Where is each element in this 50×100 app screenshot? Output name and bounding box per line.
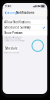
button[interactable]: Allow Notifications — [3, 20, 47, 25]
staticText: Schedule — [5, 47, 18, 50]
staticText: 9:41 — [5, 4, 12, 8]
staticText: Scheduled Summary — [4, 26, 30, 29]
staticText: Settings — [7, 11, 18, 14]
button[interactable]: Schedule — [4, 46, 19, 51]
button[interactable]: Settings — [4, 10, 19, 15]
staticText: Show Previews — [4, 31, 22, 35]
staticText: Notifications — [16, 11, 34, 14]
staticText: Allow Notifications — [4, 20, 30, 24]
button[interactable]: Scheduled Summary — [3, 25, 47, 30]
staticText: Deliver on a schedule — [4, 52, 19, 54]
button[interactable]: Show Previews — [3, 30, 47, 35]
staticText: Notifications will be delivered quietly … — [4, 36, 24, 42]
